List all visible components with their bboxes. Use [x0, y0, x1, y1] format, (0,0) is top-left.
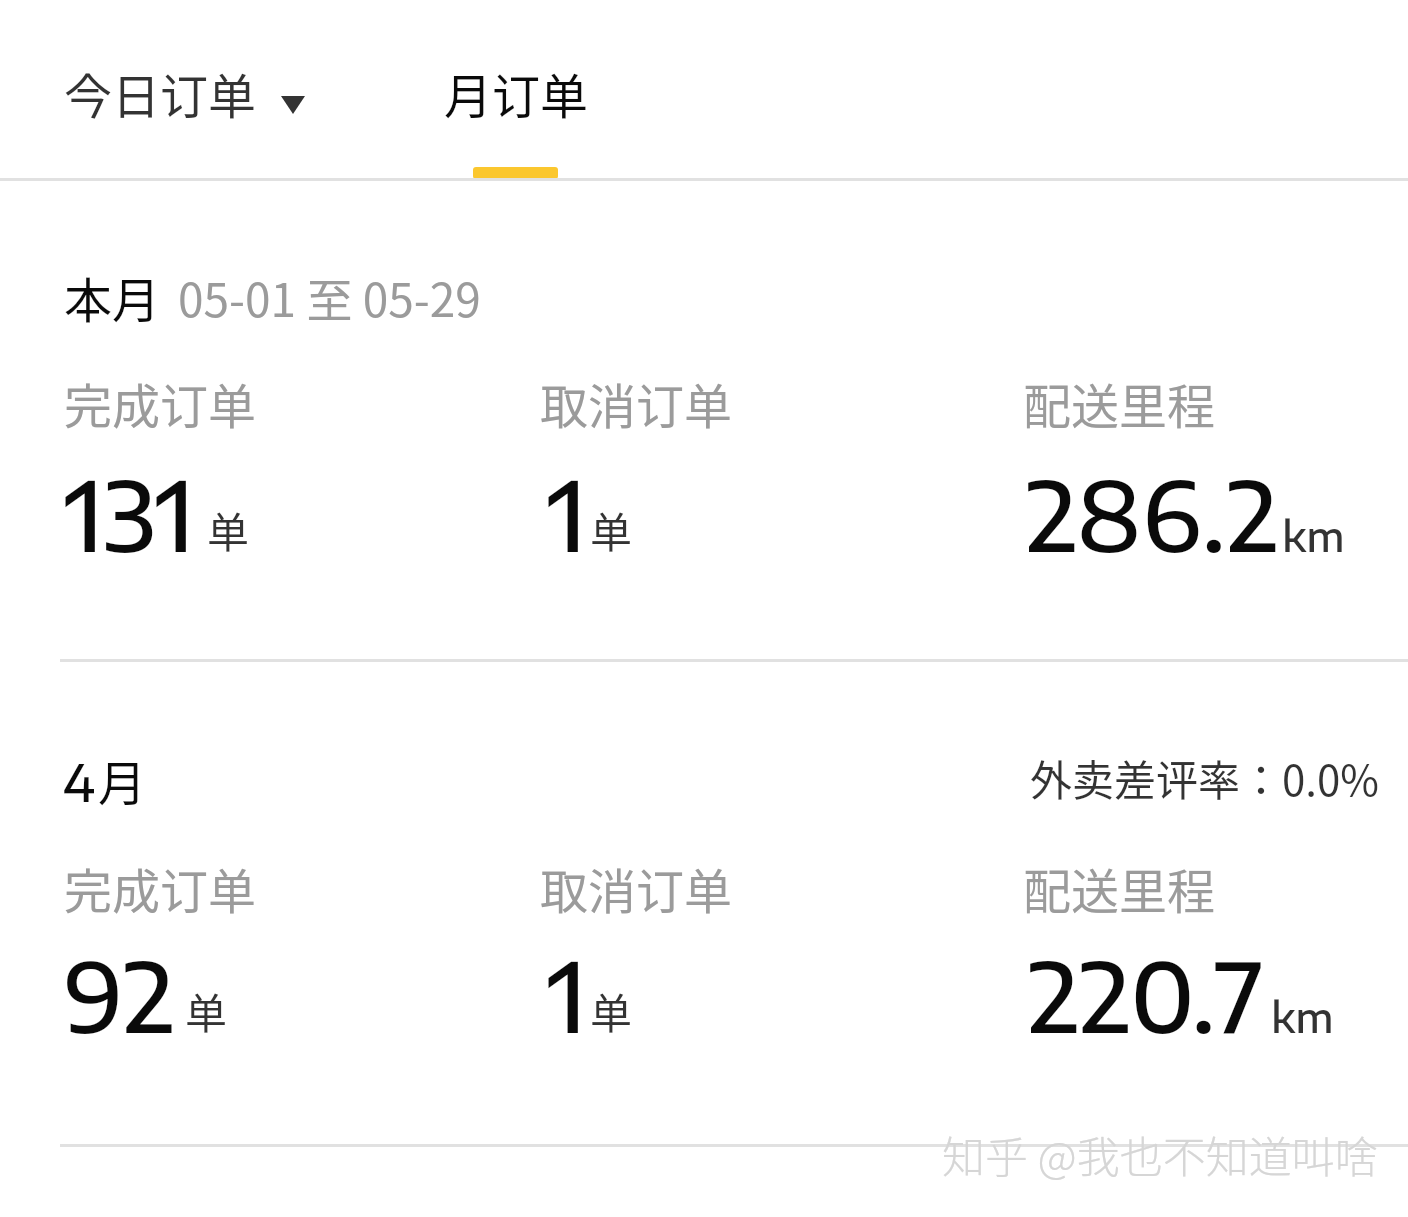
staticText: 配送里程 — [1023, 368, 1216, 438]
staticText: 05-01 至 05-29 — [178, 264, 481, 331]
staticText: 今日订单 — [64, 58, 257, 128]
staticText: 取消订单 — [540, 853, 733, 923]
staticText: km — [1282, 509, 1345, 561]
staticText: 单 — [185, 980, 228, 1041]
button[interactable] — [50, 841, 490, 1031]
button[interactable]: 月订单 — [404, 18, 629, 168]
staticText: 配送里程 — [1023, 853, 1216, 923]
button[interactable] — [526, 356, 966, 546]
staticText: 92 — [64, 935, 175, 1054]
staticText: km — [1271, 990, 1334, 1042]
staticText: 131 — [64, 454, 195, 573]
staticText: 取消订单 — [540, 368, 733, 438]
button[interactable] — [1009, 841, 1408, 1031]
staticText: 1 — [547, 935, 587, 1054]
staticText: 知乎 @我也不知道叫啥 — [942, 1123, 1378, 1185]
staticText: 4 — [63, 750, 96, 813]
other: Change date range — [281, 96, 305, 114]
staticText: 单 — [590, 980, 633, 1041]
staticText: 完成订单 — [64, 853, 257, 923]
staticText: 月 — [98, 745, 147, 815]
button[interactable]: 今日订单 — [34, 18, 335, 168]
button[interactable] — [1009, 356, 1408, 546]
staticText: 本月 — [64, 262, 161, 332]
staticText: 月订单 — [444, 58, 589, 128]
staticText: 286.2 — [1026, 454, 1279, 573]
staticText: 单 — [207, 499, 250, 560]
staticText: 完成订单 — [64, 368, 257, 438]
staticText: 1 — [547, 454, 587, 573]
button[interactable] — [50, 356, 490, 546]
staticText: 外卖差评率：0.0% — [1030, 747, 1379, 808]
button[interactable] — [526, 841, 966, 1031]
staticText: 220.7 — [1028, 935, 1264, 1054]
staticText: 单 — [590, 499, 633, 560]
